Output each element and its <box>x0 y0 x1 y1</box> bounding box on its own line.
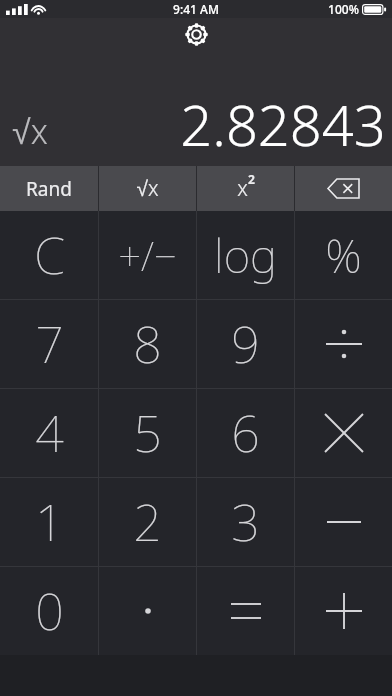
staticText: 2 <box>133 488 162 556</box>
staticText: x <box>237 174 248 203</box>
staticText: 9:41 AM <box>173 1 219 17</box>
staticText: % <box>325 224 362 287</box>
staticText: Rand <box>26 176 72 202</box>
button[interactable]: 7 <box>0 300 98 388</box>
button[interactable]: % <box>295 211 392 299</box>
button[interactable]: Subtract <box>295 478 392 566</box>
staticText: +/− <box>118 228 177 282</box>
staticText: 9 <box>231 310 260 378</box>
button[interactable]: 1 <box>0 478 98 566</box>
staticText: 8 <box>133 310 162 378</box>
staticText: 6 <box>231 399 260 467</box>
staticText: 4 <box>35 399 64 467</box>
staticText: 5 <box>133 399 162 467</box>
button[interactable]: +/− <box>99 211 196 299</box>
staticText: 3 <box>231 488 260 556</box>
button[interactable]: Equals <box>197 567 294 655</box>
button[interactable]: 5 <box>99 389 196 477</box>
button[interactable]: Decimal point <box>99 567 196 655</box>
staticText: 0 <box>35 577 64 645</box>
staticText: 1 <box>35 488 64 556</box>
button[interactable]: Backspace <box>295 166 392 211</box>
button[interactable]: Rand <box>0 166 98 211</box>
staticText: C <box>34 221 65 289</box>
staticText: √x <box>12 108 48 154</box>
button[interactable]: Settings <box>180 18 212 50</box>
staticText: 2.82843 <box>180 86 386 162</box>
button[interactable]: 8 <box>99 300 196 388</box>
button[interactable]: √x <box>99 166 196 211</box>
button[interactable]: 6 <box>197 389 294 477</box>
button[interactable]: Multiply <box>295 389 392 477</box>
button[interactable]: C <box>0 211 98 299</box>
button[interactable]: Divide <box>295 300 392 388</box>
staticText: 7 <box>35 310 64 378</box>
button[interactable]: x <box>197 166 294 211</box>
button[interactable]: 4 <box>0 389 98 477</box>
button[interactable]: 3 <box>197 478 294 566</box>
button[interactable]: 0 <box>0 567 98 655</box>
staticText: 100% <box>328 1 359 17</box>
button[interactable]: 2 <box>99 478 196 566</box>
button[interactable]: Add <box>295 567 392 655</box>
staticText: log <box>214 224 277 287</box>
staticText: √x <box>136 174 159 203</box>
staticText: 2 <box>248 171 255 187</box>
button[interactable]: 9 <box>197 300 294 388</box>
button[interactable]: log <box>197 211 294 299</box>
